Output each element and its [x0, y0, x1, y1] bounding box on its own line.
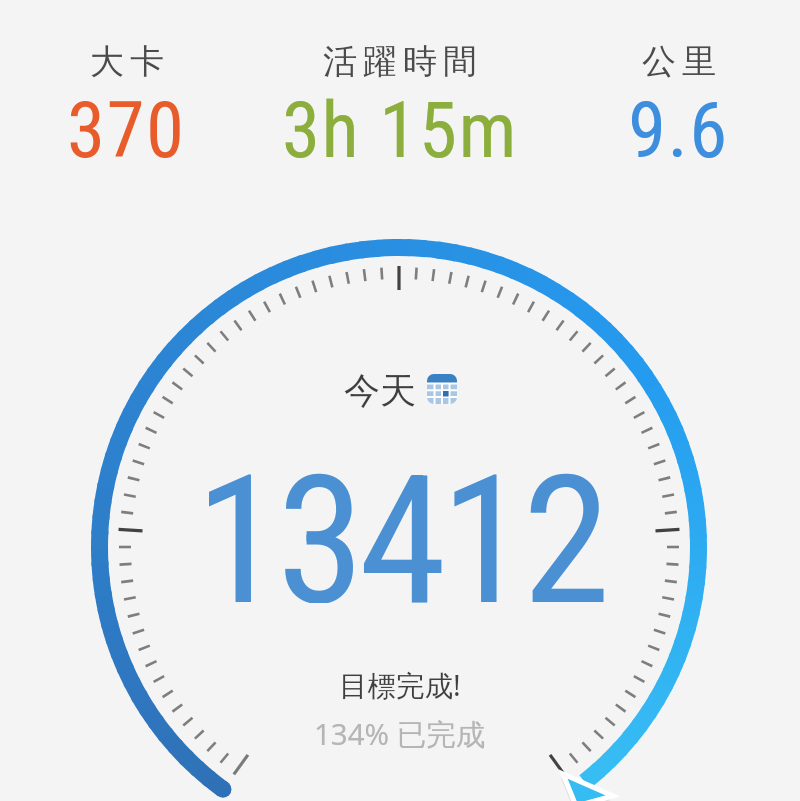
staticText: 今天 [344, 368, 416, 410]
staticText: 134% 已完成 [314, 713, 486, 753]
staticText: 3h 15m [282, 86, 518, 164]
button[interactable]: 大卡 [67, 38, 186, 164]
button[interactable]: 今天 [344, 368, 457, 410]
staticText: 目標完成! [339, 666, 461, 702]
staticText: 公里 [639, 40, 719, 83]
staticText: 大卡 [87, 40, 167, 83]
staticText: 370 [67, 86, 186, 164]
button[interactable]: 活躍時間 [282, 38, 518, 164]
staticText: 活躍時間 [320, 40, 480, 83]
button[interactable]: 公里 [628, 38, 729, 164]
staticText: 9.6 [628, 86, 729, 164]
staticText: 13412 [195, 437, 605, 603]
